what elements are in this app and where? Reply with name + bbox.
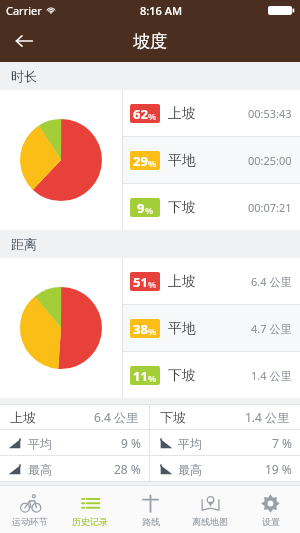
staticText: 8:16 AM [140,3,183,18]
staticText: 00:07:21 [248,200,292,215]
staticText: Carrier [6,3,42,18]
button[interactable]: 51 [123,258,300,304]
staticText: 7 % [272,435,292,451]
staticText: 最高 [28,462,52,477]
staticText: 运动环节 [12,516,48,527]
staticText: 4.7 公里 [251,321,292,336]
staticText: % [148,278,157,290]
staticText: 29 [133,152,148,170]
button[interactable]: 下坡 [150,405,300,429]
staticText: 19 % [265,461,292,477]
staticText: 上坡 [168,273,196,291]
button[interactable]: 设置 [240,486,300,533]
staticText: % [148,325,157,337]
staticText: % [145,204,154,216]
staticText: 平均 [28,436,52,451]
staticText: % [148,110,157,122]
staticText: 时长 [11,68,37,84]
button[interactable]: 平均 [150,430,300,455]
staticText: 距离 [11,236,37,252]
staticText: 下坡 [168,199,196,217]
staticText: 28 % [114,461,141,477]
button[interactable]: 62 [123,90,300,136]
staticText: 00:53:43 [248,106,292,121]
button[interactable]: 上坡 [0,405,149,429]
staticText: 9 [137,199,145,217]
button[interactable]: Back [6,23,42,59]
button[interactable]: 38 [123,305,300,351]
staticText: 11 [133,367,148,385]
button[interactable]: 最高 [150,456,300,481]
button[interactable]: 平均 [0,430,149,455]
staticText: 00:25:00 [248,153,292,168]
button[interactable]: 历史记录 [60,486,120,533]
staticText: % [148,157,157,169]
staticText: 38 [133,320,148,338]
staticText: 平均 [178,436,202,451]
button[interactable]: 9 [123,184,300,230]
staticText: 上坡 [10,409,36,425]
staticText: 1.4 公里 [251,368,292,383]
button[interactable]: 路线 [120,486,180,533]
staticText: 下坡 [160,409,186,425]
staticText: 上坡 [168,105,196,123]
staticText: 路线 [142,516,160,527]
staticText: 1.4 公里 [245,409,290,425]
staticText: 下坡 [168,367,196,385]
staticText: 6.4 公里 [251,274,292,289]
staticText: 最高 [178,462,202,477]
staticText: 62 [133,105,148,123]
staticText: 51 [133,273,148,291]
staticText: 平地 [168,320,196,338]
staticText: 9 % [121,435,141,451]
button[interactable]: 11 [123,352,300,398]
button[interactable]: 运动环节 [0,486,60,533]
button[interactable]: 29 [123,137,300,183]
staticText: 平地 [168,152,196,170]
staticText: 设置 [262,516,280,527]
staticText: 历史记录 [72,516,108,527]
staticText: 6.4 公里 [94,409,139,425]
button[interactable]: 最高 [0,456,149,481]
staticText: % [148,372,157,384]
button[interactable]: 离线地图 [180,486,240,533]
staticText: 坡度 [133,31,167,52]
staticText: 离线地图 [192,516,228,527]
